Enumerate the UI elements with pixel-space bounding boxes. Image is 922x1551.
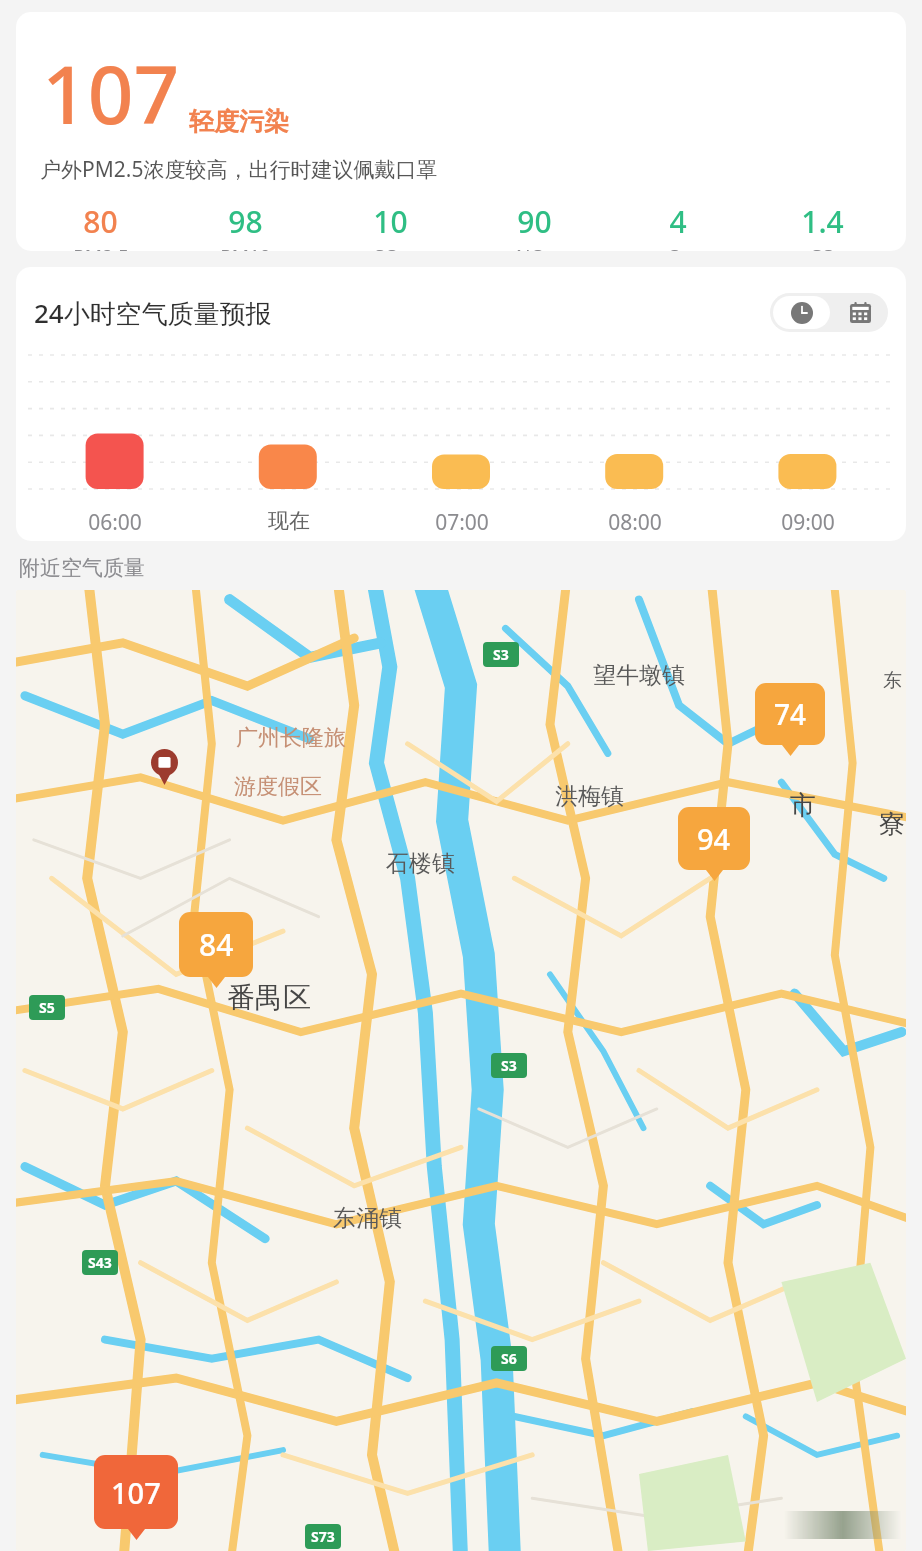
- staticText: S43: [88, 1253, 112, 1272]
- button[interactable]: Daily forecast: [833, 293, 888, 332]
- button[interactable]: 74: [755, 683, 825, 756]
- staticText: S3: [493, 645, 509, 664]
- button[interactable]: Nearby air quality map: [16, 590, 906, 1551]
- staticText: 东: [883, 669, 902, 693]
- staticText: 94: [697, 819, 731, 858]
- staticText: 08:00: [608, 508, 662, 537]
- button[interactable]: 90: [462, 201, 606, 251]
- staticText: 4: [669, 201, 687, 242]
- staticText: O₃: [667, 244, 689, 251]
- button[interactable]: 现在: [202, 508, 375, 534]
- button[interactable]: 24小时空气质量预报: [34, 295, 272, 331]
- staticText: 1.4: [801, 201, 844, 242]
- staticText: 游度假区: [234, 773, 322, 801]
- staticText: 广州长隆旅: [236, 724, 346, 752]
- staticText: 07:00: [435, 508, 489, 537]
- staticText: 80: [83, 201, 118, 242]
- staticText: PM10: [220, 244, 271, 251]
- staticText: 74: [774, 695, 807, 733]
- staticText: 90: [517, 201, 552, 242]
- staticText: NO₂: [516, 244, 552, 251]
- staticText: 市: [790, 789, 816, 822]
- staticText: 轻度污染: [189, 106, 289, 137]
- staticText: S73: [311, 1527, 335, 1546]
- button[interactable]: 4: [606, 201, 750, 251]
- staticText: 现在: [268, 508, 310, 534]
- button[interactable]: 09:00: [721, 508, 894, 537]
- button[interactable]: 10: [318, 201, 462, 251]
- button[interactable]: Hourly forecast: [773, 296, 830, 329]
- staticText: 番禺区: [227, 980, 311, 1015]
- staticText: 东涌镇: [333, 1204, 402, 1233]
- staticText: S5: [39, 998, 55, 1017]
- button[interactable]: 107: [16, 12, 906, 251]
- staticText: 98: [228, 201, 263, 242]
- staticText: 84: [199, 924, 234, 965]
- staticText: S3: [501, 1056, 517, 1075]
- staticText: 107: [42, 38, 180, 147]
- button[interactable]: 98: [173, 201, 318, 251]
- button[interactable]: 1.4: [750, 201, 894, 251]
- staticText: 石楼镇: [386, 849, 455, 878]
- button[interactable]: 08:00: [548, 508, 721, 537]
- staticText: 寮: [879, 808, 905, 841]
- staticText: PM2.5: [73, 244, 129, 251]
- button[interactable]: 94: [678, 807, 750, 881]
- staticText: S6: [501, 1349, 517, 1368]
- button[interactable]: 06:00: [28, 508, 202, 537]
- staticText: 107: [111, 1473, 161, 1512]
- staticText: CO: [809, 244, 836, 251]
- staticText: 望牛墩镇: [593, 661, 685, 690]
- button[interactable]: 84: [179, 912, 253, 988]
- staticText: 06:00: [88, 508, 142, 537]
- staticText: 户外PM2.5浓度较高，出行时建议佩戴口罩: [40, 155, 438, 184]
- button[interactable]: 107: [94, 1455, 178, 1540]
- button[interactable]: 07:00: [375, 508, 548, 537]
- staticText: 附近空气质量: [19, 555, 145, 581]
- staticText: 09:00: [781, 508, 835, 537]
- staticText: 洪梅镇: [555, 782, 624, 811]
- staticText: 10: [373, 201, 408, 242]
- button[interactable]: 80: [28, 201, 173, 251]
- staticText: SO₂: [374, 244, 406, 251]
